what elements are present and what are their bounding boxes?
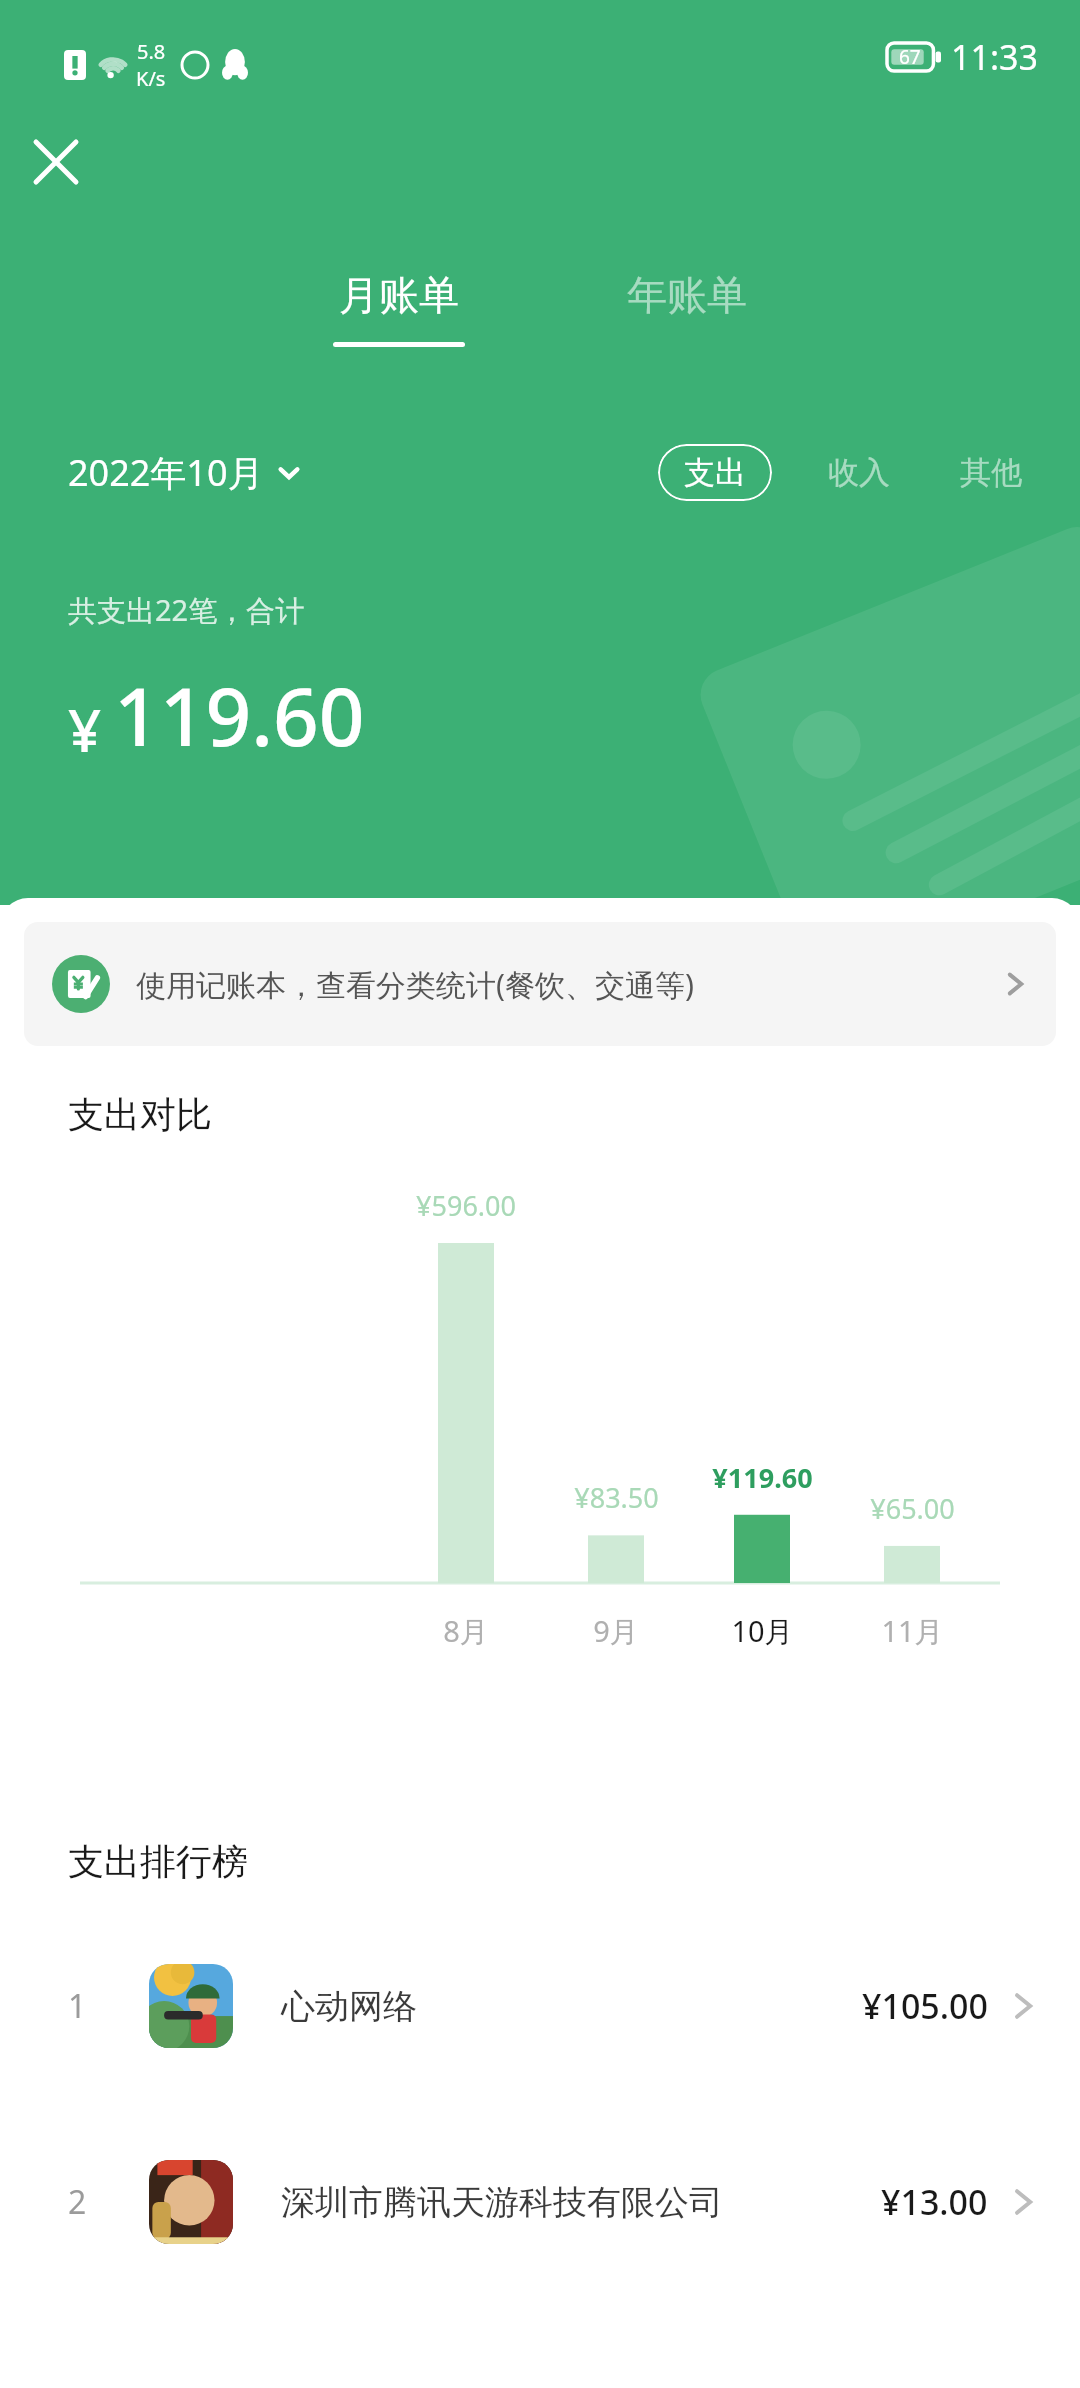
staticText: 11:33 <box>951 34 1038 80</box>
staticText: 2 <box>68 2180 87 2224</box>
button[interactable]: 年账单 <box>609 262 765 355</box>
staticText: ¥65.00 <box>870 1490 955 1527</box>
staticText: 10月 <box>731 1611 794 1651</box>
staticText: 月账单 <box>339 270 459 320</box>
button[interactable]: 2 <box>0 2144 1080 2260</box>
staticText: 67 <box>899 44 921 70</box>
staticText: ¥83.50 <box>574 1479 659 1516</box>
button[interactable]: 8月 <box>376 1611 556 1651</box>
button[interactable]: 使用记账本，查看分类统计(餐饮、交通等) <box>24 922 1056 1046</box>
button[interactable]: 9月 <box>526 1611 706 1651</box>
staticText: 共支出22笔，合计 <box>68 590 305 630</box>
staticText: K/s <box>136 65 166 92</box>
button[interactable]: 其他 <box>954 442 1028 503</box>
button[interactable]: 支出 <box>658 444 772 501</box>
button[interactable]: 11月 <box>822 1611 1002 1651</box>
button[interactable]: 月账单 <box>315 262 483 355</box>
staticText: 2022年10月 <box>68 448 264 497</box>
staticText: ¥ <box>68 690 102 769</box>
button[interactable]: Close <box>16 122 96 202</box>
staticText: 使用记账本，查看分类统计(餐饮、交通等) <box>136 964 694 1005</box>
staticText: 支出对比 <box>68 1092 212 1137</box>
button[interactable]: 1 <box>0 1948 1080 2064</box>
staticText: 119.60 <box>114 660 365 769</box>
staticText: 支出 <box>684 453 746 492</box>
button[interactable]: 10月 <box>672 1611 852 1651</box>
staticText: 5.8 <box>137 38 166 65</box>
staticText: 支出排行榜 <box>68 1839 248 1884</box>
staticText: 其他 <box>960 453 1022 492</box>
staticText: ¥119.60 <box>712 1459 813 1496</box>
staticText: ¥105.00 <box>862 1983 988 2029</box>
staticText: 收入 <box>828 453 890 492</box>
staticText: 11月 <box>881 1611 944 1651</box>
staticText: 年账单 <box>627 270 747 320</box>
button[interactable]: 2022年10月 <box>68 440 302 505</box>
staticText: ¥13.00 <box>881 2179 988 2225</box>
staticText: 8月 <box>443 1611 489 1651</box>
staticText: 深圳市腾讯天游科技有限公司 <box>281 2181 723 2224</box>
staticText: ¥596.00 <box>416 1187 516 1224</box>
staticText: 1 <box>68 1984 87 2028</box>
button[interactable]: 收入 <box>822 442 896 503</box>
staticText: 心动网络 <box>281 1985 417 2028</box>
staticText: 9月 <box>593 1611 639 1651</box>
